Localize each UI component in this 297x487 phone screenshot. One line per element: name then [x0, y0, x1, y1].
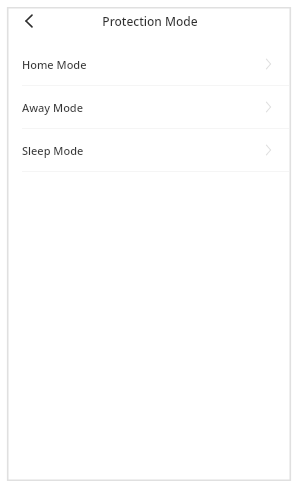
- button[interactable]: Back: [18, 10, 40, 32]
- staticText: Protection Mode: [102, 13, 198, 29]
- button[interactable]: Home Mode: [7, 43, 291, 85]
- button[interactable]: Sleep Mode: [7, 129, 291, 171]
- staticText: Away Mode: [22, 100, 83, 115]
- staticText: Sleep Mode: [22, 143, 84, 158]
- staticText: Home Mode: [22, 57, 87, 72]
- button[interactable]: Away Mode: [7, 86, 291, 128]
